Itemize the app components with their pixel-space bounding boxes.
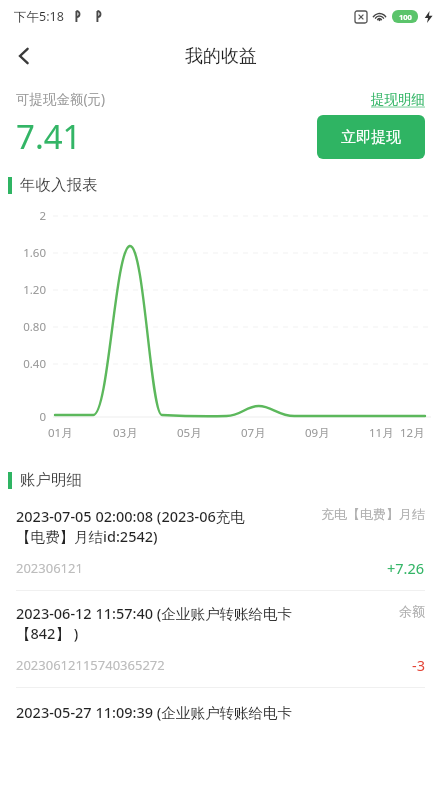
staticText: 09月 <box>305 425 330 441</box>
staticText: 01月 <box>48 425 73 441</box>
staticText: 0.40 <box>0 356 46 372</box>
staticText: 2023-05-27 11:09:39 (企业账户转账给电卡 <box>16 702 292 722</box>
staticText: 07月 <box>241 425 266 441</box>
staticText: 【电费】月结id:2542) <box>16 526 158 546</box>
staticText: 充电【电费】月结 <box>321 506 425 522</box>
staticText: 0 <box>0 409 46 425</box>
staticText: 03月 <box>113 425 138 441</box>
staticText: +7.26 <box>387 558 425 578</box>
staticText: 100 <box>399 12 412 22</box>
button[interactable]: 2023-06-12 11:57:40 (企业账户转账给电卡 <box>0 591 441 687</box>
button[interactable]: Back <box>0 32 48 80</box>
staticText: 202306121 <box>16 559 83 577</box>
button[interactable]: 提现明细 <box>371 91 425 108</box>
staticText: 1.20 <box>0 282 46 298</box>
staticText: 提现明细 <box>371 91 425 108</box>
staticText: -3 <box>412 655 425 675</box>
button[interactable]: 2023-07-05 02:00:08 (2023-06充电 <box>0 494 441 590</box>
staticText: 05月 <box>177 425 202 441</box>
staticText: 年收入报表 <box>20 175 98 195</box>
staticText: 12月 <box>400 425 425 441</box>
staticText: 余额 <box>399 603 425 619</box>
staticText: 1.60 <box>0 245 46 261</box>
staticText: 11月 <box>369 425 394 441</box>
staticText: 账户明细 <box>20 470 82 490</box>
staticText: 我的收益 <box>185 45 257 68</box>
button[interactable]: 立即提现 <box>317 115 425 159</box>
staticText: 2 <box>0 208 46 224</box>
staticText: 2023-06-12 11:57:40 (企业账户转账给电卡 <box>16 603 292 623</box>
button[interactable]: 2023-05-27 11:09:39 (企业账户转账给电卡 <box>0 688 441 728</box>
staticText: 2023-07-05 02:00:08 (2023-06充电 <box>16 506 245 526</box>
staticText: 7.41 <box>16 114 82 159</box>
staticText: 0.80 <box>0 319 46 335</box>
staticText: 下午5:18 <box>14 8 64 25</box>
staticText: 可提现金额(元) <box>16 90 106 108</box>
staticText: 20230612115740365272 <box>16 656 165 674</box>
staticText: 【842】 ) <box>16 623 79 643</box>
staticText: 立即提现 <box>341 128 401 147</box>
